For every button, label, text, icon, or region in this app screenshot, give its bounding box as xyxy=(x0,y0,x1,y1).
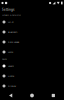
staticText: Data usage xyxy=(8,40,19,43)
button[interactable]: More xyxy=(0,47,64,57)
staticText: Wireless & networks xyxy=(2,14,21,16)
staticText: Settings xyxy=(2,7,14,11)
button[interactable]: Display xyxy=(0,81,64,91)
staticText: Device xyxy=(2,58,7,60)
button[interactable]: Home xyxy=(0,71,64,81)
button[interactable]: Layers xyxy=(0,61,64,71)
button[interactable]: Home xyxy=(21,91,43,100)
staticText: Layers xyxy=(8,64,14,67)
button[interactable]: Data usage xyxy=(0,37,64,47)
button[interactable]: Bluetooth xyxy=(0,27,64,37)
staticText: Display xyxy=(8,84,16,87)
staticText: Bluetooth xyxy=(8,30,17,33)
button[interactable]: Back xyxy=(0,91,21,100)
staticText: Wi-Fi xyxy=(8,20,14,23)
staticText: Home xyxy=(8,74,14,77)
button[interactable]: Recent apps xyxy=(43,91,64,100)
staticText: More xyxy=(8,50,13,53)
button[interactable]: Wi-Fi xyxy=(0,17,64,27)
